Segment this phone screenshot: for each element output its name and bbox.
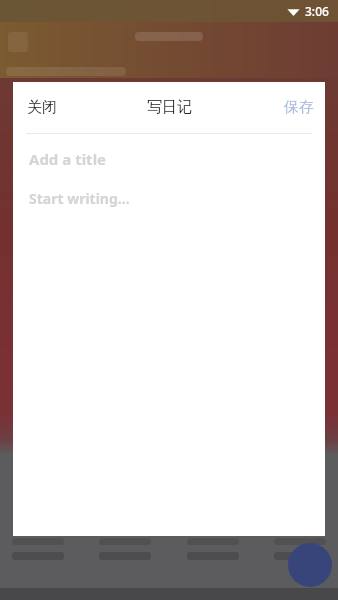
staticText: 3:06 (305, 3, 329, 19)
staticText: 保存 (284, 98, 314, 117)
staticText: 写日记 (147, 98, 192, 117)
button[interactable]: 关闭 (13, 82, 71, 133)
staticText: Start writing... (29, 189, 130, 208)
button[interactable]: 保存 (270, 82, 325, 133)
button[interactable]: Add a title (13, 146, 325, 172)
staticText: Add a title (29, 149, 107, 169)
button[interactable]: Add entry (288, 543, 332, 587)
staticText: 关闭 (27, 98, 57, 117)
